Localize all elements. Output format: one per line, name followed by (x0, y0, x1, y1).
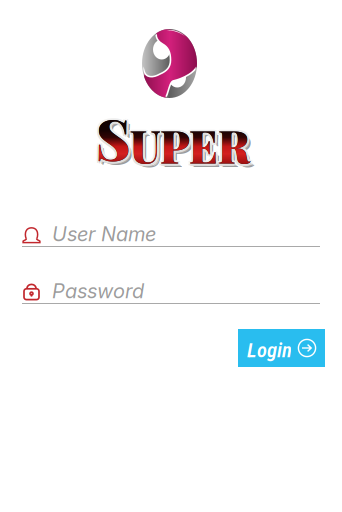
staticText: UPER (132, 118, 252, 176)
staticText: S (94, 100, 128, 175)
staticText: S (99, 103, 133, 178)
staticText: UPER (130, 114, 250, 172)
staticText: UPER (130, 118, 250, 177)
staticText: UPER (128, 116, 248, 175)
staticText: S (96, 98, 130, 172)
staticText: UPER (133, 119, 253, 178)
staticText: UPER (130, 116, 250, 175)
staticText: UPER (128, 114, 248, 173)
staticText: S (94, 102, 128, 176)
staticText: Password (52, 279, 144, 303)
staticText: UPER (128, 118, 248, 176)
staticText: S (98, 102, 132, 176)
staticText: S (94, 98, 128, 173)
staticText: S (96, 100, 130, 175)
staticText: S (98, 100, 132, 175)
staticText: S (96, 102, 130, 177)
staticText: UPER (132, 116, 252, 175)
staticText: UPER (133, 119, 253, 177)
staticText: Login (247, 338, 292, 362)
staticText: S (98, 98, 132, 173)
staticText: UPER (132, 114, 252, 173)
staticText: User Name (52, 222, 156, 246)
button[interactable]: Login (238, 329, 325, 367)
staticText: S (99, 103, 133, 177)
